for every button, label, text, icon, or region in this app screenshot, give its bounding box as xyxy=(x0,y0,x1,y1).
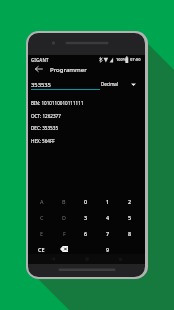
button[interactable]: DEC: 353535 xyxy=(28,119,145,131)
button[interactable]: A xyxy=(30,193,53,209)
staticText: DEC: 353535 xyxy=(31,125,59,131)
staticText: OCT: 1262377 xyxy=(31,113,61,119)
staticText: A xyxy=(40,198,44,205)
button[interactable]: E xyxy=(30,225,53,241)
staticText: 07:00 xyxy=(130,57,141,63)
staticText: 353535 xyxy=(31,81,51,89)
button[interactable]: 7 xyxy=(97,225,119,241)
button[interactable]: 1 xyxy=(97,193,119,209)
staticText: C xyxy=(40,214,44,221)
staticText: 7 xyxy=(106,230,110,237)
staticText: 5 xyxy=(128,214,132,221)
other: Delete xyxy=(60,246,68,252)
button[interactable]: OCT: 1262377 xyxy=(28,107,145,119)
staticText: HEX: 564FF xyxy=(31,138,55,144)
button[interactable]: D xyxy=(53,209,75,225)
staticText: 4 xyxy=(106,214,110,221)
button[interactable]: 8 xyxy=(119,225,141,241)
staticText: E xyxy=(40,230,44,237)
staticText: Decimal xyxy=(101,81,119,87)
button[interactable]: BIN: 1010110010111111 xyxy=(28,94,145,106)
staticText: 9 xyxy=(106,246,110,253)
staticText: 3 xyxy=(84,214,88,221)
button[interactable]: 0 xyxy=(75,193,97,209)
button[interactable]: F xyxy=(53,225,75,241)
button[interactable]: 5 xyxy=(119,209,141,225)
staticText: Programmer xyxy=(50,65,87,73)
button[interactable]: 3 xyxy=(75,209,97,225)
button[interactable]: 6 xyxy=(75,225,97,241)
staticText: B xyxy=(62,198,66,205)
button[interactable]: 4 xyxy=(97,209,119,225)
staticText: 100% xyxy=(116,57,127,62)
staticText: D xyxy=(62,214,66,221)
button[interactable]: 9 xyxy=(97,241,119,257)
staticText: F xyxy=(63,230,66,237)
staticText: 1 xyxy=(106,198,110,205)
button[interactable]: B xyxy=(53,193,75,209)
button[interactable]: HEX: 564FF xyxy=(28,132,145,144)
button[interactable]: Delete xyxy=(53,241,75,257)
button[interactable]: 2 xyxy=(119,193,141,209)
staticText: BIN: 1010110010111111 xyxy=(31,100,84,106)
button[interactable]: Back xyxy=(32,62,46,76)
button[interactable]: C xyxy=(30,209,53,225)
staticText: CE xyxy=(38,246,45,253)
staticText: 0 xyxy=(84,198,88,205)
staticText: 6 xyxy=(84,230,88,237)
staticText: 8 xyxy=(128,230,132,237)
button[interactable]: CE xyxy=(30,241,53,257)
staticText: GIGANT xyxy=(31,57,49,63)
button[interactable]: Decimal xyxy=(99,78,139,90)
staticText: 2 xyxy=(128,198,132,205)
